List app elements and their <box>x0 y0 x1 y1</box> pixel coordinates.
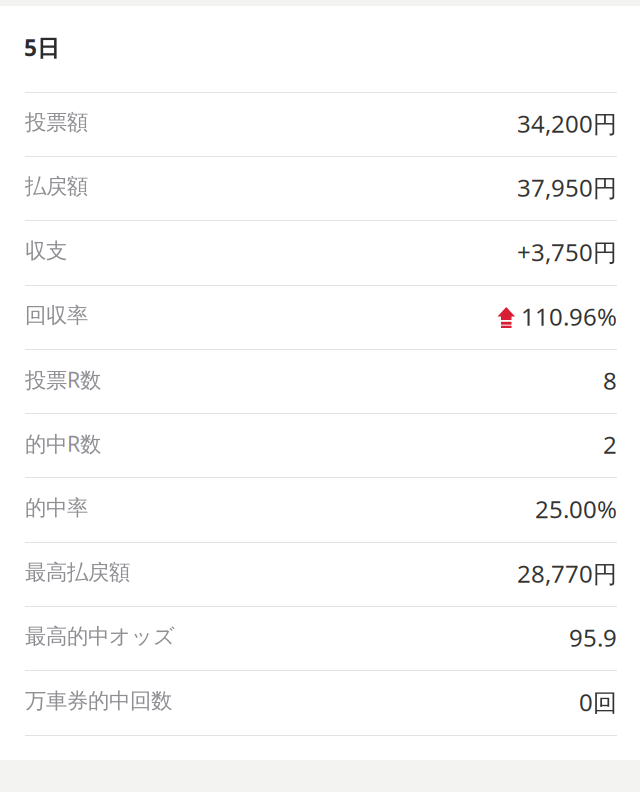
staticText: 95.9 <box>569 622 617 653</box>
button[interactable]: 万車券的中回数 <box>0 671 640 735</box>
staticText: 110.96% <box>521 301 617 332</box>
staticText: 最高的中オッズ <box>25 623 175 650</box>
staticText: 5日 <box>24 32 60 62</box>
staticText: 収支 <box>25 238 67 264</box>
staticText: +3,750円 <box>517 236 617 268</box>
staticText: 払戻額 <box>25 173 88 200</box>
button[interactable]: 払戻額 <box>0 157 640 220</box>
staticText: 0回 <box>579 686 617 718</box>
staticText: 的中R数 <box>25 429 101 458</box>
button[interactable]: 投票R数 <box>0 350 640 413</box>
button[interactable]: 収支 <box>0 221 640 285</box>
button[interactable]: 最高的中オッズ <box>0 607 640 670</box>
staticText: 回収率 <box>25 302 88 329</box>
staticText: 最高払戻額 <box>25 559 130 586</box>
button[interactable]: 回収率 <box>0 286 640 349</box>
button[interactable]: 最高払戻額 <box>0 543 640 606</box>
staticText: 万車券的中回数 <box>25 688 172 714</box>
staticText: 2 <box>603 429 617 460</box>
button[interactable]: 的中率 <box>0 478 640 542</box>
staticText: 投票R数 <box>25 365 101 394</box>
staticText: 37,950円 <box>517 172 617 203</box>
staticText: 34,200円 <box>517 108 617 139</box>
staticText: 25.00% <box>535 493 617 525</box>
button[interactable]: 的中R数 <box>0 414 640 477</box>
staticText: 的中率 <box>25 495 88 521</box>
button[interactable]: 投票額 <box>0 93 640 156</box>
staticText: 投票額 <box>25 109 88 136</box>
staticText: 28,770円 <box>517 558 617 589</box>
staticText: 8 <box>603 365 617 396</box>
